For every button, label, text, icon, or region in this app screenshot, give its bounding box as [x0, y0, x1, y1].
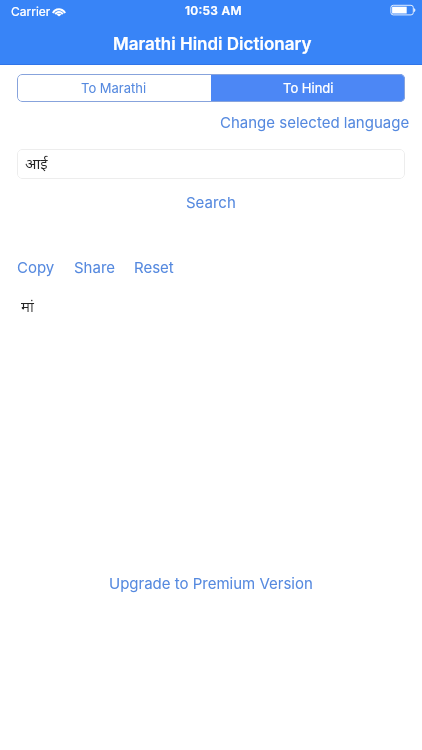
- other: Battery level: [390, 4, 417, 16]
- button[interactable]: Copy: [9, 253, 63, 281]
- button[interactable]: Search: [172, 186, 250, 218]
- staticText: मां: [21, 296, 34, 316]
- button[interactable]: Reset: [126, 253, 182, 281]
- staticText: Change selected language: [220, 113, 410, 131]
- staticText: Copy: [17, 258, 55, 276]
- staticText: To Hindi: [283, 80, 334, 96]
- staticText: Upgrade to Premium Version: [109, 574, 313, 592]
- staticText: 10:53 AM: [185, 3, 242, 18]
- other: Wi-Fi signal: [51, 5, 67, 16]
- staticText: Marathi Hindi Dictionary: [113, 34, 312, 55]
- button[interactable]: Share: [66, 253, 124, 281]
- button[interactable]: Upgrade to Premium Version: [95, 567, 327, 599]
- staticText: Search: [186, 193, 236, 211]
- staticText: आई: [25, 153, 48, 173]
- staticText: Reset: [134, 258, 174, 276]
- button[interactable]: आई: [17, 149, 405, 179]
- button[interactable]: To Hindi: [211, 74, 405, 102]
- button[interactable]: To Marathi: [17, 74, 211, 102]
- button[interactable]: Change selected language: [212, 108, 418, 136]
- staticText: Share: [74, 258, 116, 276]
- staticText: Carrier: [11, 4, 51, 19]
- staticText: To Marathi: [81, 80, 147, 96]
